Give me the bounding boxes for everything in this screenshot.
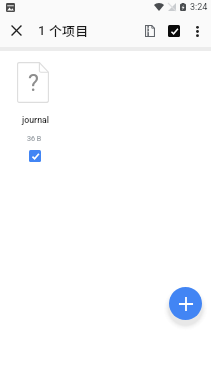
- staticText: ?: [28, 70, 39, 97]
- button[interactable]: More options: [185, 19, 209, 43]
- staticText: journal: [22, 115, 50, 125]
- button[interactable]: Add: [169, 287, 202, 320]
- staticText: 36 B: [27, 134, 42, 142]
- button[interactable]: Close: [0, 14, 33, 47]
- button[interactable]: Archive: [139, 20, 161, 42]
- staticText: 个项目: [49, 21, 89, 40]
- staticText: 3:24: [190, 2, 208, 13]
- button[interactable]: Select all: [162, 19, 186, 43]
- button[interactable]: Selected: [29, 150, 41, 162]
- staticText: 1: [38, 23, 46, 38]
